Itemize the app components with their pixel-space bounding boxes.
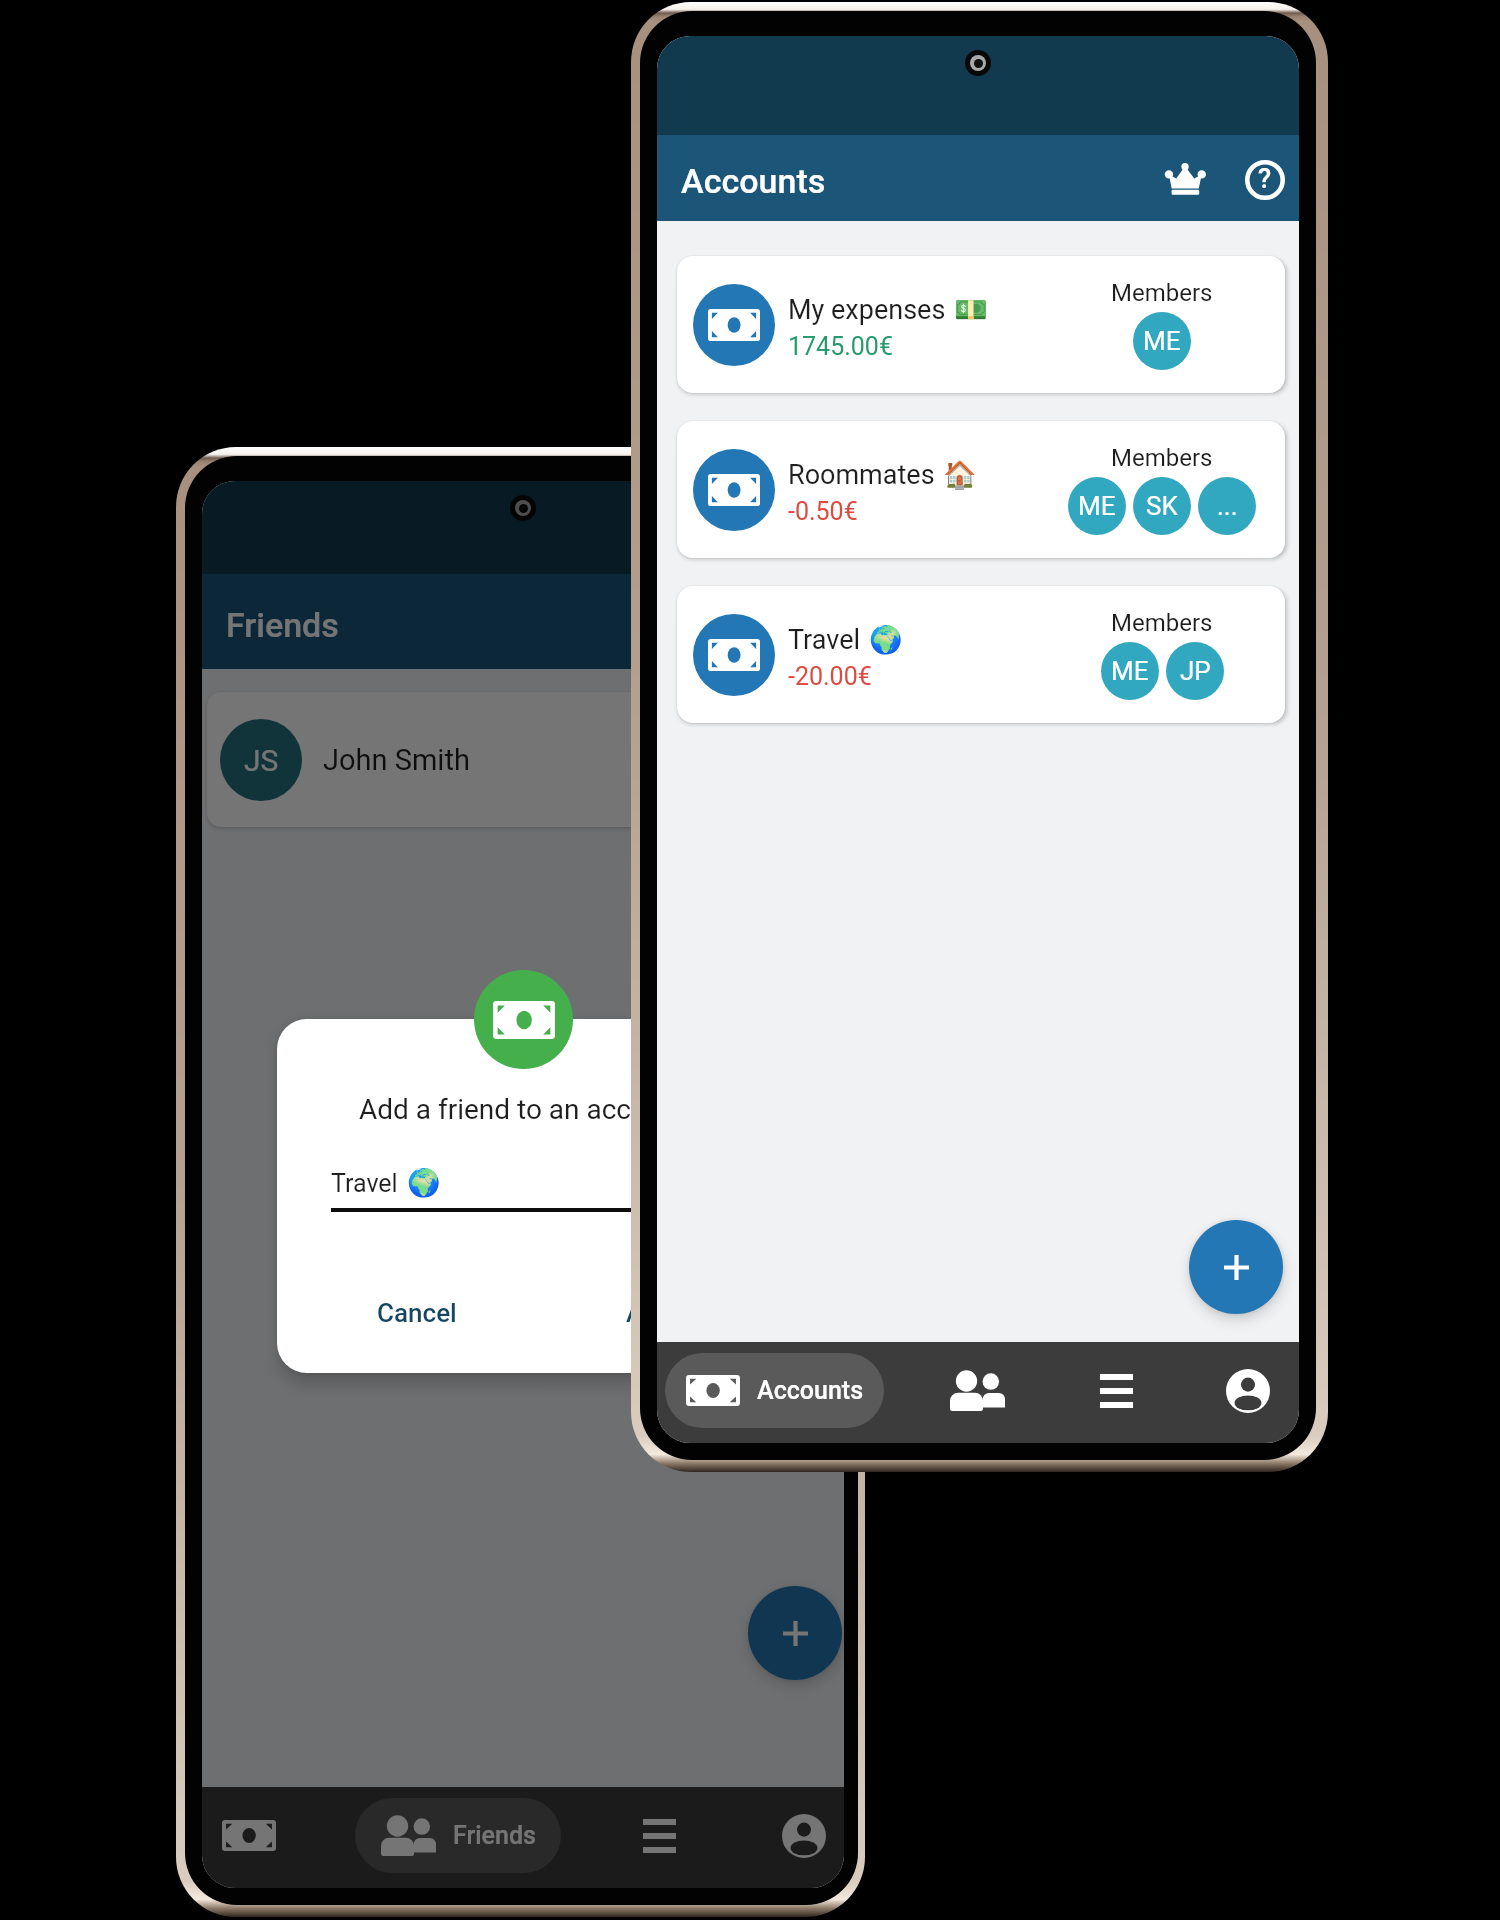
staticText: 🌍 [869, 624, 903, 656]
button[interactable]: Menu [1088, 1353, 1144, 1428]
button[interactable]: Profile [1220, 1353, 1276, 1428]
button[interactable]: Add [614, 1289, 685, 1337]
button[interactable]: Help [1228, 143, 1299, 217]
staticText: Add [626, 1298, 673, 1328]
staticText: Accounts [681, 161, 826, 201]
staticText: ME [1078, 491, 1116, 521]
staticText: Members [1111, 444, 1213, 472]
staticText: -20.00€ [788, 662, 872, 691]
staticText: Travel [788, 624, 861, 656]
staticText: Friends [453, 1821, 536, 1850]
staticText: ME [1143, 326, 1181, 356]
staticText: 💵 [954, 294, 988, 326]
staticText: JP [1180, 656, 1211, 686]
staticText: Friends [226, 605, 339, 645]
button[interactable]: Add [748, 1586, 842, 1680]
button[interactable]: Travel [677, 586, 1285, 723]
staticText: Accounts [757, 1376, 864, 1405]
button[interactable]: Cancel [365, 1289, 469, 1337]
staticText: Members [1111, 279, 1213, 307]
button[interactable]: My expenses [677, 256, 1285, 393]
staticText: Members [1111, 609, 1213, 637]
staticText: Travel [331, 1169, 398, 1198]
button[interactable]: Roommates [677, 421, 1285, 558]
staticText: 🏠 [943, 459, 977, 491]
button[interactable]: Friends [949, 1353, 1005, 1428]
staticText: ... [1217, 491, 1238, 521]
staticText: Cancel [377, 1298, 457, 1328]
staticText: 1745.00€ [788, 332, 893, 361]
staticText: JS [244, 743, 279, 778]
staticText: 🌍 [407, 1167, 441, 1199]
staticText: John Smith [323, 743, 470, 777]
staticText: ? [1258, 163, 1272, 195]
button[interactable]: Add [1189, 1220, 1283, 1314]
button[interactable]: Menu [631, 1798, 687, 1873]
button[interactable]: Accounts [221, 1798, 277, 1873]
staticText: Add a friend to an account [359, 1093, 688, 1126]
staticText: -0.50€ [788, 497, 858, 526]
button[interactable]: Friends [355, 1798, 561, 1873]
staticText: Roommates [788, 459, 935, 491]
button[interactable]: Accounts [665, 1353, 884, 1428]
staticText: SK [1146, 491, 1178, 521]
button[interactable]: JS [207, 692, 839, 827]
button[interactable]: Premium [1148, 141, 1222, 215]
button[interactable]: Profile [776, 1798, 832, 1873]
staticText: ME [1111, 656, 1149, 686]
staticText: My expenses [788, 294, 946, 326]
